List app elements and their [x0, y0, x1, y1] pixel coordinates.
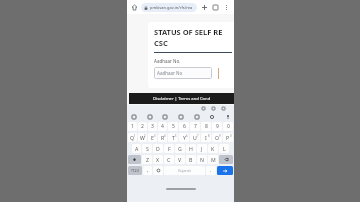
button[interactable]: Aadhaar No — [154, 67, 212, 79]
button[interactable]: B — [186, 155, 196, 164]
button[interactable]: . — [206, 166, 216, 175]
button[interactable]: Q — [128, 133, 137, 142]
button[interactable]: Space — [164, 166, 205, 175]
button[interactable]: P — [223, 133, 233, 142]
button[interactable]: Switch tabs — [211, 3, 220, 12]
staticText: STATUS OF SELF RE — [154, 27, 223, 37]
staticText: 6 — [183, 123, 186, 130]
staticText: A — [135, 145, 139, 152]
staticText: , — [147, 167, 149, 174]
staticText: Aadhaar No. — [154, 58, 181, 64]
staticText: W — [140, 134, 145, 141]
staticText: R — [161, 134, 165, 141]
staticText: Gujarati — [178, 168, 191, 173]
button[interactable]: Settings — [207, 112, 216, 121]
staticText: 1 — [134, 134, 136, 138]
button[interactable]: Translate — [176, 112, 185, 121]
staticText: 6 — [186, 134, 188, 138]
staticText: G — [178, 145, 182, 152]
button[interactable]: GIF — [145, 112, 154, 121]
staticText: Disclaimer | Terms and Cond — [153, 96, 211, 102]
button[interactable]: Z — [142, 155, 152, 164]
staticText: 9 — [219, 134, 221, 138]
button[interactable]: More options — [222, 3, 231, 12]
button[interactable]: 4 — [158, 122, 167, 131]
button[interactable]: Emoji — [129, 112, 138, 121]
staticText: S — [146, 145, 149, 152]
button[interactable]: 3 — [148, 122, 157, 131]
button[interactable]: A — [132, 144, 141, 153]
button[interactable]: Clipboard — [160, 112, 169, 121]
staticText: Q — [130, 134, 135, 141]
staticText: X — [156, 156, 160, 163]
staticText: Y — [183, 134, 186, 141]
staticText: 5 — [172, 123, 175, 130]
staticText: 9 — [216, 123, 219, 130]
button[interactable]: X — [153, 155, 163, 164]
button[interactable]: F — [164, 144, 174, 153]
staticText: 3 — [151, 123, 154, 130]
staticText: P — [226, 134, 230, 141]
staticText: Z — [146, 156, 149, 163]
staticText: 8 — [208, 134, 210, 138]
button[interactable]: New tab — [200, 3, 209, 12]
button[interactable]: Shortcut 1 — [200, 105, 207, 112]
button[interactable]: Voice input — [223, 112, 232, 121]
button[interactable]: Shift — [128, 155, 141, 164]
button[interactable]: ?123 — [128, 166, 142, 175]
button[interactable]: 8 — [201, 122, 211, 131]
staticText: 4 — [161, 123, 164, 130]
button[interactable]: Shortcut 2 — [210, 105, 217, 112]
button[interactable]: 5 — [168, 122, 178, 131]
staticText: 2 — [144, 134, 146, 138]
button[interactable]: J — [197, 144, 207, 153]
button[interactable]: W — [138, 133, 147, 142]
button[interactable]: E — [148, 133, 157, 142]
button[interactable]: , — [143, 166, 152, 175]
button[interactable]: G — [175, 144, 185, 153]
button[interactable]: Y — [179, 133, 189, 142]
button[interactable]: pmkisan.gov.in/rfs/rea — [141, 3, 197, 12]
button[interactable]: Enter — [217, 166, 233, 175]
button[interactable]: C — [164, 155, 174, 164]
staticText: C — [167, 156, 171, 163]
staticText: 0 — [230, 134, 232, 138]
button[interactable]: 0 — [223, 122, 233, 131]
staticText: F — [168, 145, 171, 152]
button[interactable]: Home — [130, 3, 139, 12]
button[interactable]: L — [219, 144, 229, 153]
staticText: 0 — [227, 123, 230, 130]
button[interactable]: 6 — [179, 122, 189, 131]
button[interactable]: 7 — [190, 122, 200, 131]
staticText: J — [201, 145, 203, 152]
staticText: 7 — [194, 123, 197, 130]
button[interactable]: Backspace — [219, 155, 233, 164]
staticText: 3 — [154, 134, 156, 138]
button[interactable]: Emoji keyboard — [153, 166, 163, 175]
button[interactable]: T — [168, 133, 178, 142]
button[interactable]: D — [153, 144, 163, 153]
button[interactable]: K — [208, 144, 218, 153]
button[interactable]: S — [142, 144, 152, 153]
staticText: T — [172, 134, 175, 141]
staticText: U — [193, 134, 197, 141]
button[interactable]: 9 — [212, 122, 222, 131]
staticText: . — [210, 167, 212, 174]
button[interactable]: R — [158, 133, 167, 142]
button[interactable]: I — [201, 133, 211, 142]
button[interactable]: Sticker — [192, 112, 201, 121]
staticText: 5 — [175, 134, 177, 138]
button[interactable]: U — [190, 133, 200, 142]
staticText: H — [189, 145, 193, 152]
button[interactable]: 1 — [128, 122, 137, 131]
button[interactable]: V — [175, 155, 185, 164]
staticText: 7 — [197, 134, 199, 138]
button[interactable]: H — [186, 144, 196, 153]
button[interactable]: N — [197, 155, 207, 164]
button[interactable]: Shortcut 3 — [220, 105, 227, 112]
staticText: ?123 — [131, 168, 139, 173]
button[interactable]: O — [212, 133, 222, 142]
staticText: V — [178, 156, 182, 163]
button[interactable]: 2 — [138, 122, 147, 131]
button[interactable]: M — [208, 155, 218, 164]
